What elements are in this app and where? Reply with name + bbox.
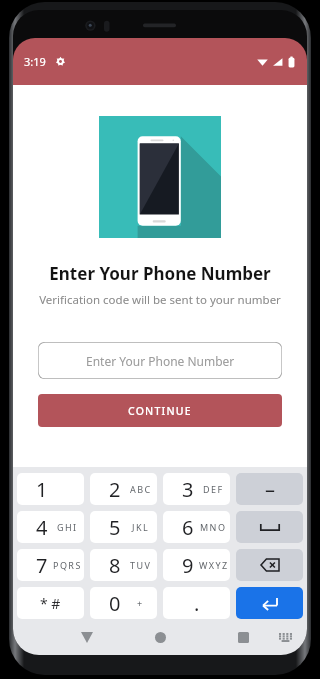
staticText: 0	[109, 590, 121, 617]
button[interactable]: Enter	[236, 587, 303, 619]
button[interactable]: 8	[90, 549, 157, 581]
button[interactable]: 1	[17, 473, 84, 505]
staticText: 7	[36, 552, 48, 579]
staticText: DEF	[203, 483, 224, 495]
button[interactable]: .	[163, 587, 230, 619]
staticText: 3:19	[24, 54, 46, 69]
staticText: 6	[182, 514, 194, 541]
button[interactable]: Enter Your Phone Number	[38, 342, 282, 379]
staticText: Enter Your Phone Number	[49, 262, 271, 285]
staticText: CONTINUE	[128, 404, 192, 418]
button[interactable]: 5	[90, 511, 157, 543]
button[interactable]: 3	[163, 473, 230, 505]
staticText: WXYZ	[199, 559, 229, 571]
button[interactable]: –	[236, 473, 303, 505]
button[interactable]: Home	[142, 620, 178, 655]
button[interactable]: 2	[90, 473, 157, 505]
staticText: MNO	[200, 521, 227, 533]
button[interactable]: 7	[17, 549, 84, 581]
button[interactable]: * #	[17, 587, 84, 619]
button[interactable]: 0	[90, 587, 157, 619]
button[interactable]: Switch keyboard	[271, 620, 299, 655]
button[interactable]: 9	[163, 549, 230, 581]
staticText: 4	[36, 514, 48, 541]
staticText: 2	[109, 476, 121, 503]
button[interactable]: 4	[17, 511, 84, 543]
staticText: 8	[109, 552, 121, 579]
staticText: TUV	[130, 559, 152, 571]
staticText: 5	[109, 514, 121, 541]
button[interactable]: Back	[69, 620, 105, 655]
staticText: Verification code will be sent to your n…	[39, 292, 281, 308]
button[interactable]: 6	[163, 511, 230, 543]
staticText: 9	[182, 552, 194, 579]
staticText: JKL	[132, 521, 150, 533]
button[interactable]: Delete	[236, 549, 303, 581]
staticText: ABC	[130, 483, 152, 495]
button[interactable]: Recent apps	[225, 620, 261, 655]
staticText: GHI	[57, 521, 78, 533]
staticText: Enter Your Phone Number	[86, 353, 235, 369]
staticText: 1	[36, 476, 48, 503]
staticText: PQRS	[53, 559, 82, 571]
staticText: .	[194, 590, 200, 617]
staticText: 3	[182, 476, 194, 503]
button[interactable]: Space	[236, 511, 303, 543]
staticText: –	[265, 476, 275, 503]
button[interactable]: CONTINUE	[38, 394, 282, 427]
staticText: +	[137, 597, 144, 609]
staticText: * #	[40, 594, 61, 613]
